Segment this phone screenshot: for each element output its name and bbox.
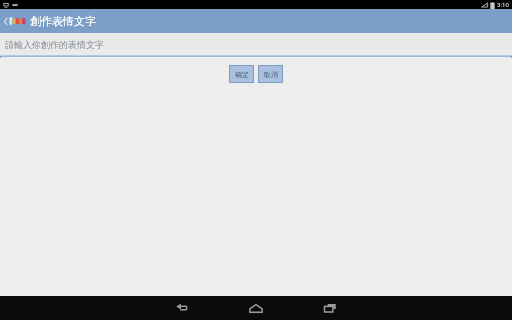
staticText: 請輸入你創作的表情文字 bbox=[5, 39, 104, 50]
staticText: 取消 bbox=[264, 70, 278, 79]
staticText: 3:10 bbox=[497, 1, 509, 9]
staticText: 創作表情文字 bbox=[30, 14, 96, 28]
button[interactable]: Back bbox=[159, 296, 205, 320]
button[interactable]: Home bbox=[233, 296, 279, 320]
button[interactable]: 確定 bbox=[230, 66, 253, 82]
button[interactable]: 請輸入你創作的表情文字 bbox=[0, 33, 512, 55]
button[interactable]: Navigate up bbox=[2, 11, 9, 31]
staticText: 確定 bbox=[235, 70, 249, 79]
button[interactable]: Recent apps bbox=[307, 296, 353, 320]
button[interactable]: 取消 bbox=[259, 66, 282, 82]
